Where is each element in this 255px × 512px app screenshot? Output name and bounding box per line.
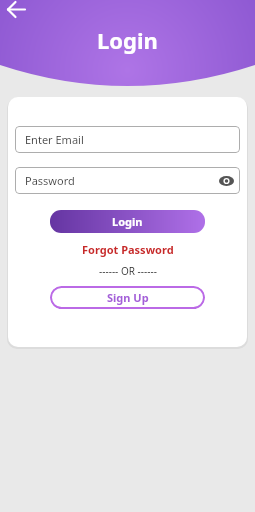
staticText: Enter Email bbox=[25, 132, 84, 147]
staticText: Password bbox=[25, 173, 75, 188]
staticText: Login bbox=[112, 214, 143, 229]
staticText: Forgot Password bbox=[82, 242, 174, 257]
button[interactable]: Enter Email bbox=[15, 126, 240, 153]
button[interactable]: Password bbox=[15, 167, 240, 194]
button[interactable]: Forgot Password bbox=[82, 242, 174, 257]
staticText: ------ OR ------ bbox=[99, 264, 157, 278]
staticText: Sign Up bbox=[107, 290, 149, 305]
button[interactable] bbox=[4, 0, 30, 22]
button[interactable]: Login bbox=[50, 210, 205, 233]
staticText: Login bbox=[97, 25, 158, 55]
button[interactable]: Sign Up bbox=[50, 286, 205, 309]
